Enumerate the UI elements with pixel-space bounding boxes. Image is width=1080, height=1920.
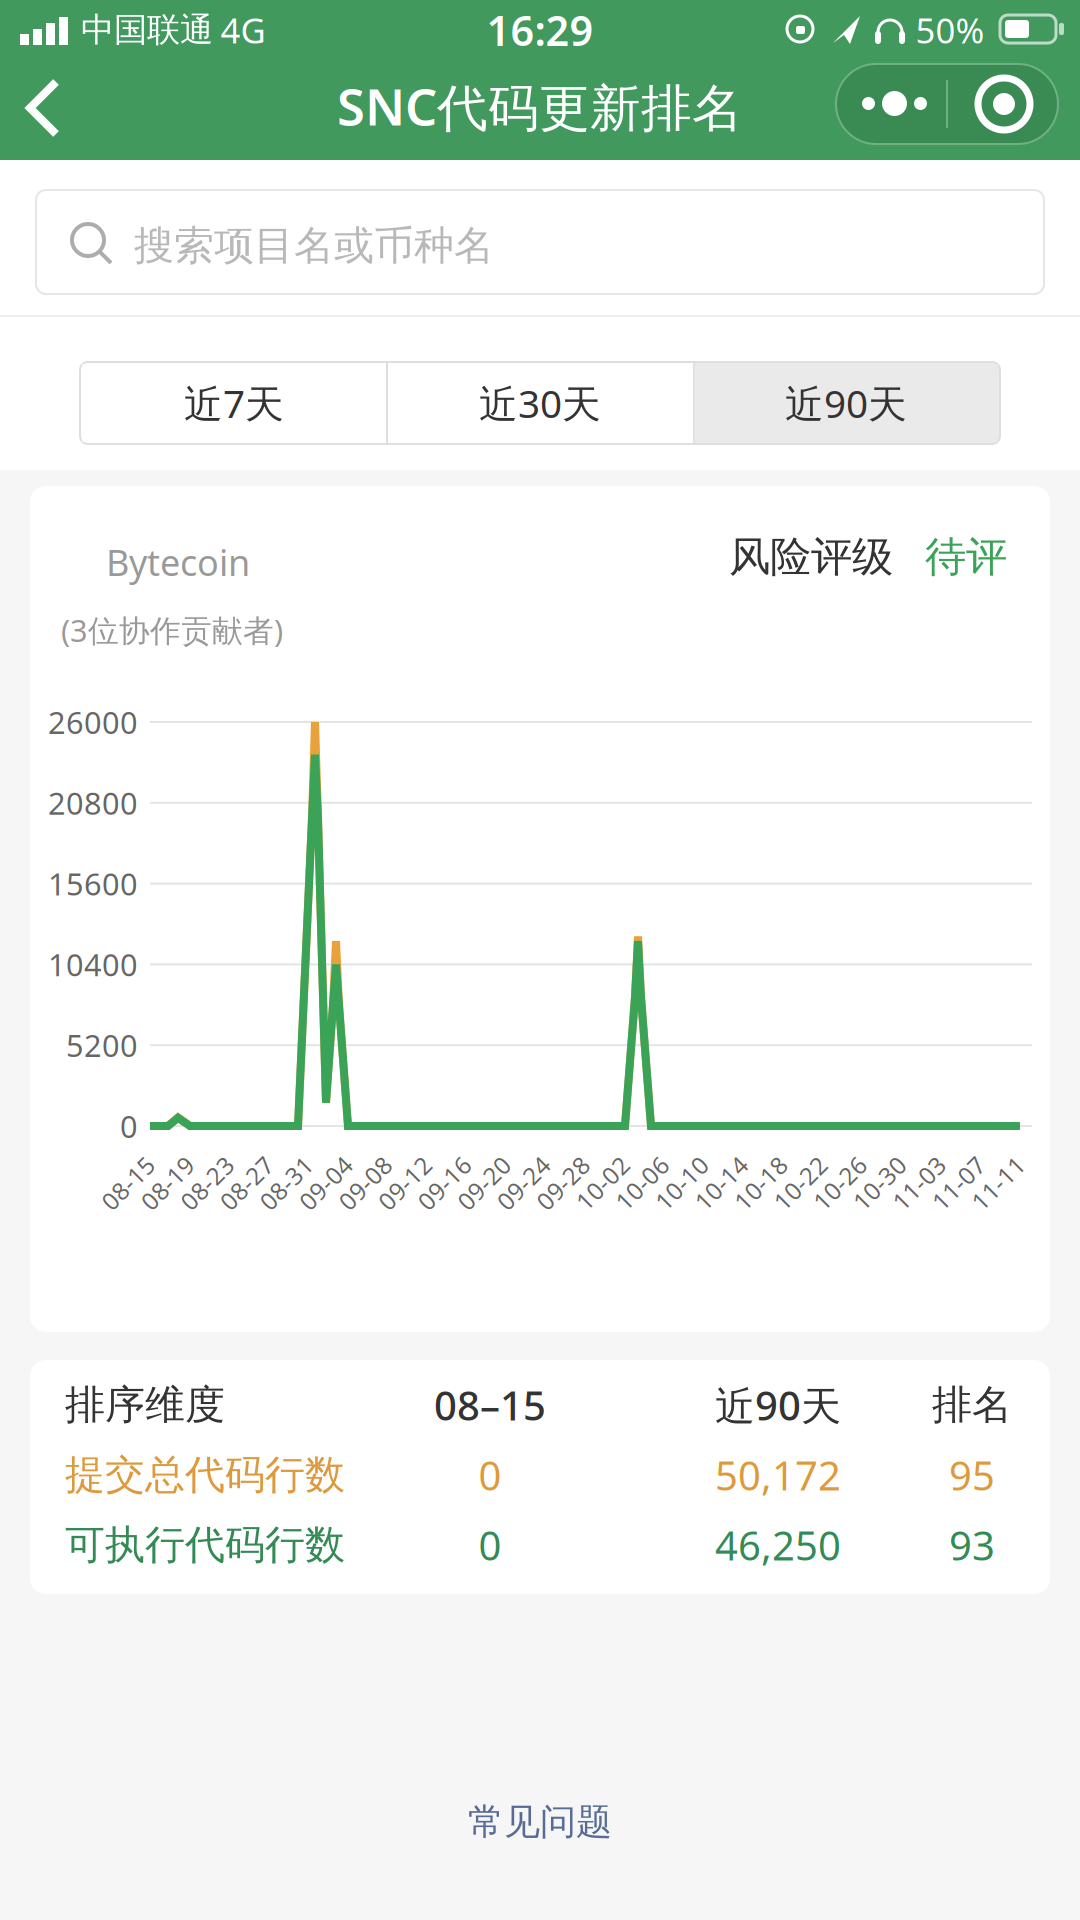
staticText: 待评	[925, 532, 1007, 582]
staticText: 10-30	[847, 1167, 911, 1199]
button[interactable]: 近90天	[694, 364, 997, 442]
staticText: 近30天	[479, 377, 601, 429]
staticText: 50,172	[715, 1448, 841, 1501]
staticText: 排名	[932, 1380, 1012, 1429]
staticText: 10-06	[610, 1167, 674, 1199]
staticText: 50%	[915, 7, 984, 53]
staticText: 搜索项目名或币种名	[134, 221, 494, 270]
staticText: 93	[949, 1518, 995, 1571]
staticText: 近7天	[184, 377, 284, 429]
staticText: 09-04	[294, 1167, 358, 1199]
staticText: 近90天	[785, 377, 907, 429]
staticText: 10-22	[768, 1167, 832, 1199]
staticText: 10-14	[689, 1167, 753, 1199]
staticText: 09-16	[412, 1167, 476, 1199]
staticText: 11-11	[966, 1167, 1030, 1199]
staticText: 排序维度	[65, 1380, 225, 1429]
staticText: 09-24	[491, 1167, 555, 1199]
staticText: 16:29	[486, 3, 593, 57]
button[interactable]: 近7天	[82, 364, 385, 442]
staticText: 95	[949, 1448, 995, 1501]
staticText: 10-26	[808, 1167, 872, 1199]
button[interactable]: 近30天	[388, 364, 691, 442]
staticText: 0	[478, 1448, 501, 1501]
button[interactable]: Exit mini program	[977, 77, 1031, 131]
staticText: 10-02	[571, 1167, 635, 1199]
button[interactable]: 搜索项目名或币种名	[36, 190, 1044, 294]
staticText: 10-18	[729, 1167, 793, 1199]
staticText: 11-07	[926, 1167, 990, 1199]
button[interactable]: 待评	[925, 532, 1007, 582]
staticText: 15600	[48, 863, 138, 904]
staticText: 08-27	[215, 1167, 279, 1199]
staticText: 08-15	[96, 1167, 160, 1199]
staticText: 近90天	[715, 1378, 841, 1431]
staticText: 常见问题	[468, 1800, 612, 1844]
staticText: 46,250	[715, 1518, 841, 1571]
staticText: 11-03	[887, 1167, 951, 1199]
staticText: 风险评级	[729, 532, 893, 582]
staticText: SNC代码更新排名	[337, 72, 743, 140]
staticText: 09-20	[452, 1167, 516, 1199]
staticText: 10400	[48, 944, 138, 985]
button[interactable]: Back	[28, 82, 62, 138]
staticText: 0	[478, 1518, 501, 1571]
staticText: 08-19	[136, 1167, 200, 1199]
staticText: 0	[120, 1106, 138, 1146]
staticText: 中国联通	[81, 9, 213, 50]
staticText: 4G	[220, 7, 265, 53]
staticText: 26000	[48, 702, 138, 742]
button[interactable]: 常见问题	[468, 1800, 612, 1844]
staticText: 08-23	[175, 1167, 239, 1199]
staticText: 可执行代码行数	[65, 1520, 345, 1569]
staticText: 09-12	[373, 1167, 437, 1199]
button[interactable]: More	[862, 84, 927, 124]
staticText: Bytecoin	[106, 538, 250, 586]
staticText: 08-31	[254, 1167, 318, 1199]
staticText: 08–15	[434, 1378, 546, 1431]
staticText: 09-28	[531, 1167, 595, 1199]
staticText: 20800	[48, 782, 138, 823]
staticText: (3位协作贡献者)	[61, 610, 283, 650]
staticText: 10-10	[650, 1167, 714, 1199]
staticText: 提交总代码行数	[65, 1450, 345, 1499]
staticText: 5200	[66, 1025, 138, 1065]
staticText: 09-08	[333, 1167, 397, 1199]
